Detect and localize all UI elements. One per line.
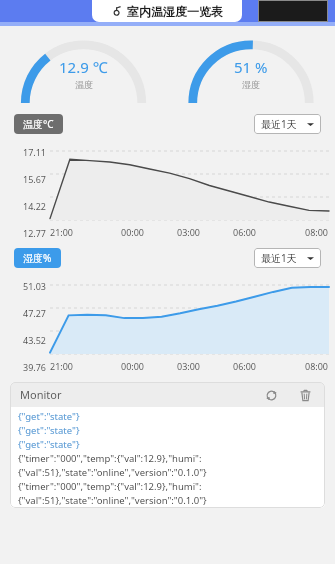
button[interactable]: Clear bbox=[295, 385, 315, 405]
staticText: 21:00 bbox=[50, 360, 74, 372]
staticText: {"timer":"000","temp":{"val":12.9},"humi… bbox=[18, 480, 202, 493]
staticText: 06:00 bbox=[233, 226, 257, 238]
staticText: 08:00 bbox=[305, 360, 329, 372]
button[interactable]: 室内温湿度一览表 bbox=[92, 0, 242, 22]
staticText: 室内温湿度一览表 bbox=[127, 4, 223, 19]
staticText: 43.52 bbox=[22, 334, 46, 346]
staticText: 最近1天 bbox=[261, 251, 297, 265]
staticText: 湿度 bbox=[242, 79, 260, 90]
staticText: 21:00 bbox=[50, 226, 74, 238]
staticText: 17.11 bbox=[22, 146, 46, 158]
staticText: 湿度% bbox=[23, 251, 52, 265]
staticText: 47.27 bbox=[22, 307, 46, 319]
staticText: {"get":"state"} bbox=[18, 410, 80, 423]
staticText: {"val":51},"state":"online","version":"0… bbox=[18, 466, 207, 479]
staticText: 51 % bbox=[234, 57, 268, 77]
staticText: 51.03 bbox=[22, 280, 46, 292]
staticText: {"get":"state"} bbox=[18, 438, 80, 451]
staticText: 06:00 bbox=[233, 360, 257, 372]
staticText: 00:00 bbox=[121, 226, 145, 238]
staticText: 最近1天 bbox=[261, 117, 297, 131]
button[interactable]: 湿度% bbox=[14, 248, 61, 268]
staticText: {"val":51},"state":"online","version":"0… bbox=[18, 494, 207, 507]
button[interactable]: Refresh bbox=[261, 385, 281, 405]
staticText: 00:00 bbox=[121, 360, 145, 372]
staticText: 03:00 bbox=[177, 226, 201, 238]
staticText: 温度°C bbox=[23, 117, 54, 131]
staticText: 12.77 bbox=[22, 227, 46, 239]
button[interactable]: 最近1天 bbox=[254, 248, 321, 268]
staticText: 12.9 ℃ bbox=[59, 57, 108, 77]
staticText: {"get":"state"} bbox=[18, 424, 80, 437]
staticText: Monitor bbox=[20, 387, 62, 402]
button[interactable]: 最近1天 bbox=[254, 114, 321, 134]
staticText: 03:00 bbox=[177, 360, 201, 372]
staticText: 温度 bbox=[75, 79, 93, 90]
staticText: 39.76 bbox=[22, 361, 46, 373]
button[interactable]: 温度°C bbox=[14, 114, 63, 134]
staticText: 14.22 bbox=[22, 200, 46, 212]
staticText: 08:00 bbox=[305, 226, 329, 238]
staticText: 15.67 bbox=[22, 173, 46, 185]
staticText: {"timer":"000","temp":{"val":12.9},"humi… bbox=[18, 452, 202, 465]
